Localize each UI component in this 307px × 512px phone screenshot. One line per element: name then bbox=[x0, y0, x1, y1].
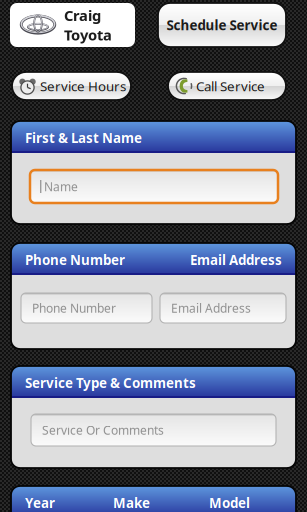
staticText: Phone Number bbox=[32, 300, 116, 316]
staticText: Schedule Service bbox=[166, 16, 277, 34]
staticText: Name bbox=[44, 178, 78, 194]
staticText: Email Address bbox=[171, 300, 251, 316]
staticText: Service Type & Comments bbox=[25, 374, 196, 392]
button[interactable]: Schedule Service bbox=[158, 3, 286, 47]
staticText: Toyota bbox=[64, 25, 112, 44]
staticText: Service Or Comments bbox=[42, 422, 164, 438]
staticText: First & Last Name bbox=[25, 129, 142, 147]
button[interactable]: Call Service bbox=[168, 72, 286, 100]
staticText: Service Hours bbox=[40, 77, 126, 95]
button[interactable]: Email Address bbox=[160, 293, 286, 323]
button[interactable]: Phone Number bbox=[21, 293, 152, 323]
staticText: Make bbox=[113, 494, 150, 512]
staticText: Phone Number bbox=[25, 251, 125, 269]
button[interactable]: Service Hours bbox=[12, 72, 131, 100]
staticText: Craig bbox=[64, 5, 101, 25]
staticText: Call Service bbox=[196, 77, 265, 95]
button[interactable]: Name bbox=[30, 170, 278, 203]
staticText: Email Address bbox=[190, 251, 282, 269]
staticText: Model bbox=[209, 494, 250, 512]
staticText: Year bbox=[25, 494, 55, 512]
button[interactable]: Service Or Comments bbox=[31, 414, 276, 446]
button[interactable]: Craig bbox=[10, 3, 135, 47]
